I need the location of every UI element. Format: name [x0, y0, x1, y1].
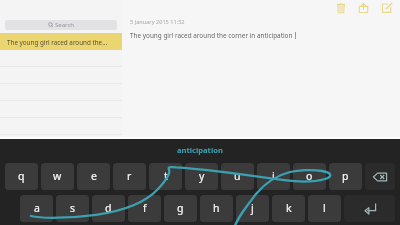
button[interactable]: j [236, 195, 269, 222]
staticText: 5 January 2015 11:52 [130, 18, 185, 26]
button[interactable]: Delete [334, 1, 347, 14]
button[interactable]: r [113, 163, 146, 190]
button[interactable]: a [20, 195, 53, 222]
staticText: w [53, 169, 62, 183]
button[interactable]: o [293, 163, 326, 190]
staticText: e [91, 169, 97, 183]
button[interactable]: anticipation [0, 142, 400, 158]
button[interactable]: Share [357, 1, 370, 14]
staticText: i [272, 169, 275, 183]
staticText: anticipation [177, 145, 223, 155]
button[interactable]: h [200, 195, 233, 222]
button[interactable]: p [329, 163, 362, 190]
button[interactable]: f [128, 195, 161, 222]
staticText: y [199, 169, 205, 183]
button[interactable]: w [41, 163, 74, 190]
button[interactable]: u [221, 163, 254, 190]
staticText: u [234, 169, 241, 183]
staticText: k [286, 201, 292, 215]
staticText: h [213, 201, 220, 215]
staticText: f [143, 201, 147, 215]
staticText: The young girl raced around the... [7, 38, 108, 47]
staticText: d [105, 201, 112, 215]
button[interactable]: s [56, 195, 89, 222]
staticText: q [18, 169, 25, 183]
button[interactable]: t [149, 163, 182, 190]
staticText: The young girl raced around the corner i… [130, 31, 293, 40]
button[interactable] [0, 135, 122, 139]
button[interactable]: Backspace [365, 163, 395, 190]
button[interactable]: d [92, 195, 125, 222]
button[interactable]: Compose [380, 1, 393, 14]
button[interactable]: Search [5, 20, 117, 30]
staticText: r [127, 169, 132, 183]
staticText: o [306, 169, 313, 183]
staticText: Search [55, 21, 74, 29]
button[interactable]: l [308, 195, 341, 222]
staticText: t [164, 169, 168, 183]
staticText: p [342, 169, 349, 183]
staticText: a [34, 201, 40, 215]
button[interactable]: i [257, 163, 290, 190]
button[interactable]: y [185, 163, 218, 190]
button[interactable]: k [272, 195, 305, 222]
staticText: j [251, 201, 254, 215]
staticText: g [177, 201, 184, 215]
staticText: l [323, 201, 326, 215]
button[interactable]: The young girl raced around the... [0, 33, 122, 50]
button[interactable]: e [77, 163, 110, 190]
button[interactable]: q [5, 163, 38, 190]
staticText: s [70, 201, 76, 215]
button[interactable]: Return [344, 195, 395, 222]
button[interactable]: g [164, 195, 197, 222]
